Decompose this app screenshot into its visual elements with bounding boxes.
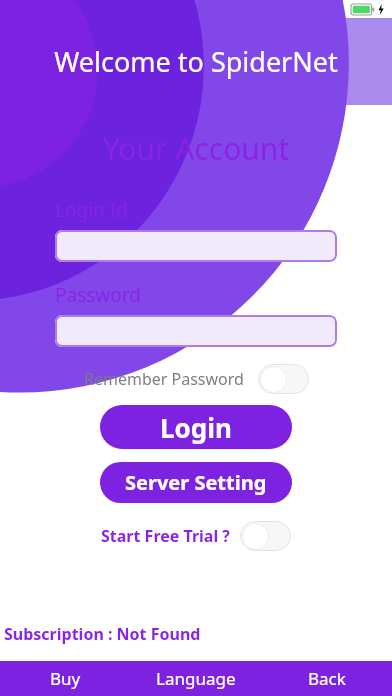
- staticText: Your Account: [0, 128, 392, 169]
- button[interactable]: Remember Password: [0, 364, 392, 394]
- button[interactable]: Buy: [0, 661, 130, 696]
- button[interactable]: Login: [100, 405, 292, 449]
- staticText: Password: [55, 282, 141, 308]
- staticText: Language: [156, 667, 236, 690]
- button[interactable]: [55, 230, 337, 262]
- staticText: 7:14 PM: [184, 2, 227, 17]
- button[interactable]: Toggle: [258, 364, 309, 394]
- button[interactable]: [55, 315, 337, 347]
- staticText: Subscription : Not Found: [4, 623, 201, 645]
- button[interactable]: Server Setting: [100, 462, 292, 503]
- staticText: Start Free Trial ?: [101, 525, 230, 547]
- staticText: Remember Password: [84, 368, 244, 390]
- button[interactable]: Toggle: [240, 521, 291, 551]
- button[interactable]: Back: [261, 661, 392, 696]
- button[interactable]: Language: [130, 661, 261, 696]
- button[interactable]: Start Free Trial ?: [0, 521, 392, 551]
- staticText: Welcome to SpiderNet: [0, 43, 392, 80]
- staticText: Login Id: [55, 197, 128, 223]
- staticText: Login: [160, 410, 232, 445]
- staticText: Server Setting: [125, 469, 267, 496]
- staticText: Back: [308, 667, 346, 690]
- staticText: Buy: [50, 667, 81, 690]
